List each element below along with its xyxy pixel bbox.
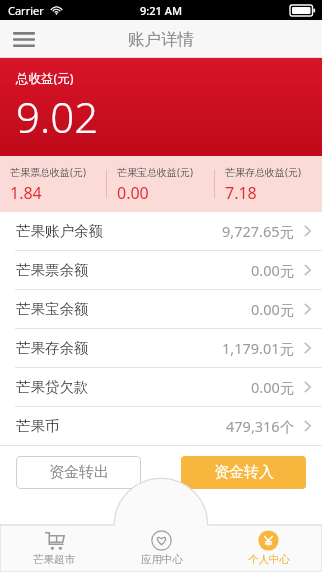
staticText: 479,316个 xyxy=(226,416,295,436)
button[interactable]: 个人中心 xyxy=(215,524,322,572)
staticText: 芒果贷欠款 xyxy=(16,378,89,396)
staticText: 0.00元 xyxy=(251,377,295,397)
staticText: 账户详情 xyxy=(128,29,194,50)
staticText: 芒果币 xyxy=(16,417,60,435)
button[interactable]: 应用中心 xyxy=(108,524,215,572)
staticText: 1.84 xyxy=(10,182,42,204)
button[interactable]: 资金转出 xyxy=(16,456,141,489)
button[interactable]: 芒果宝余额 xyxy=(0,290,322,328)
staticText: 芒果票余额 xyxy=(16,261,89,279)
staticText: Carrier xyxy=(8,3,44,18)
staticText: 资金转出 xyxy=(49,463,109,482)
staticText: 个人中心 xyxy=(248,553,290,566)
staticText: 资金转入 xyxy=(214,463,274,482)
staticText: 芒果存总收益(元) xyxy=(225,165,301,179)
button[interactable]: 芒果币 xyxy=(0,407,322,445)
staticText: 7.18 xyxy=(225,182,257,204)
staticText: 0.00元 xyxy=(251,260,295,280)
button[interactable]: 芒果存余额 xyxy=(0,329,322,367)
staticText: 9,727.65元 xyxy=(222,221,295,241)
staticText: 芒果宝余额 xyxy=(16,300,89,318)
staticText: 1,179.01元 xyxy=(222,338,295,358)
staticText: 芒果票总收益(元) xyxy=(10,165,86,179)
staticText: 芒果存余额 xyxy=(16,339,89,357)
staticText: 应用中心 xyxy=(141,553,183,566)
staticText: 0.00元 xyxy=(251,299,295,319)
staticText: 0.00 xyxy=(117,182,149,204)
button[interactable]: 资金转入 xyxy=(181,456,306,489)
button[interactable]: Menu xyxy=(4,20,44,58)
staticText: 总收益(元) xyxy=(16,70,74,87)
staticText: 9:21 AM xyxy=(140,3,183,18)
staticText: 芒果宝总收益(元) xyxy=(117,165,193,179)
button[interactable]: 芒果票余额 xyxy=(0,251,322,289)
button[interactable]: 芒果贷欠款 xyxy=(0,368,322,406)
button[interactable]: 芒果超市 xyxy=(0,524,108,572)
staticText: 芒果超市 xyxy=(33,553,75,566)
staticText: 芒果账户余额 xyxy=(16,222,103,240)
staticText: 9.02 xyxy=(16,88,99,145)
button[interactable]: 芒果账户余额 xyxy=(0,212,322,250)
